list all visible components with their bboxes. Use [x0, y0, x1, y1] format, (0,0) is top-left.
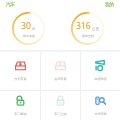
staticText: 剩余油量 [23, 34, 35, 38]
button[interactable]: 车门上锁 [40, 91, 80, 120]
button[interactable]: 寻找车辆 [80, 91, 120, 120]
staticText: 汽车 [6, 2, 16, 8]
staticText: 车门上锁 [54, 112, 67, 116]
button[interactable]: 我的 [101, 0, 119, 10]
staticText: 开启车窗 [14, 77, 27, 81]
staticText: 316 [76, 20, 91, 32]
staticText: 关闭车窗 [54, 77, 67, 81]
button[interactable]: 30 [12, 12, 45, 45]
button[interactable]: 车门解锁 [0, 91, 40, 120]
staticText: 车门解锁 [14, 112, 27, 116]
button[interactable]: 开启车窗 [0, 52, 40, 90]
staticText: 30 [21, 20, 31, 32]
button[interactable]: 关闭车窗 [40, 52, 80, 90]
button[interactable]: 316 [71, 12, 104, 45]
staticText: 续航里程 [82, 34, 94, 38]
button[interactable]: 汽车 [2, 0, 20, 10]
staticText: 件 [32, 27, 36, 31]
staticText: 寻找车辆 [94, 112, 107, 116]
button[interactable]: 远程鸣笛 [80, 52, 120, 90]
staticText: 远程鸣笛 [94, 77, 107, 81]
staticText: 我的 [105, 2, 115, 8]
staticText: 公里 [92, 27, 99, 31]
